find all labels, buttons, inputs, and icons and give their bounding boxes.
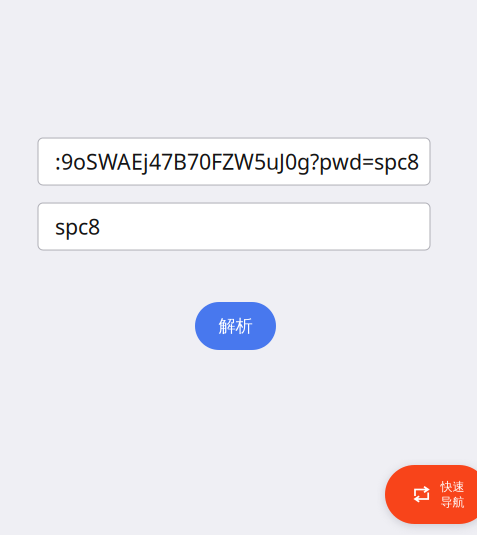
staticText: 导航 bbox=[440, 495, 464, 510]
button[interactable]: :9oSWAEj47B70FZW5uJ0g?pwd=spc8 bbox=[38, 138, 430, 185]
button[interactable]: spc8 bbox=[38, 203, 430, 250]
staticText: 解析 bbox=[218, 315, 252, 337]
button[interactable]: 解析 bbox=[195, 302, 276, 350]
button[interactable]: 快速 bbox=[385, 465, 477, 524]
staticText: 快速 bbox=[440, 479, 464, 494]
staticText: spc8 bbox=[55, 212, 100, 241]
staticText: :9oSWAEj47B70FZW5uJ0g?pwd=spc8 bbox=[55, 147, 419, 176]
